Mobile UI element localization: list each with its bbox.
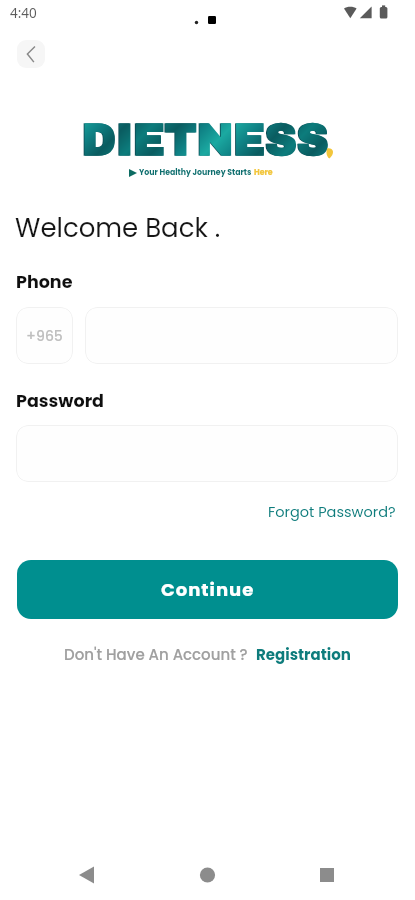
staticText: +965	[26, 326, 63, 346]
staticText: Password	[16, 389, 105, 414]
button[interactable]: Registration	[256, 644, 351, 665]
staticText: DIETNESS	[82, 116, 329, 164]
button[interactable]: Forgot Password?	[268, 502, 396, 522]
staticText: Your Healthy Journey Starts	[139, 167, 254, 178]
button[interactable]: Continue	[17, 560, 398, 619]
staticText: Continue	[161, 577, 255, 602]
staticText: 4:40	[10, 4, 37, 22]
button[interactable]: Back	[17, 40, 45, 68]
staticText: Here	[254, 167, 273, 178]
button[interactable]: +965	[16, 307, 73, 364]
staticText: Don't Have An Account ?	[64, 644, 248, 665]
staticText: Phone	[16, 270, 73, 295]
staticText: DIETNESS	[81, 116, 328, 164]
staticText: Welcome Back .	[15, 210, 221, 246]
